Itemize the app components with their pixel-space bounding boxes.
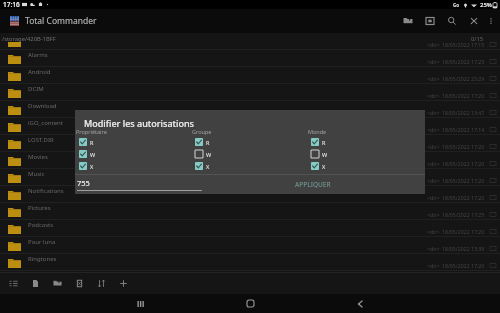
button[interactable]: Android [0, 67, 500, 84]
button[interactable]: DCIM [0, 84, 500, 101]
button[interactable]: New folder [46, 272, 68, 294]
staticText: <dir> [427, 160, 440, 167]
staticText: 17:16 [3, 0, 20, 9]
staticText: 18/05/2022 17:20 [442, 160, 485, 167]
staticText: 18/05/2022 23:29 [442, 75, 485, 82]
staticText: <dir> [427, 228, 440, 235]
staticText: LOST.DIR [28, 136, 54, 144]
button[interactable]: Alarms [0, 50, 500, 67]
staticText: /storage/420B-1BFF [2, 35, 56, 43]
button[interactable]: Music [0, 169, 500, 186]
button[interactable]: Select all [2, 272, 24, 294]
staticText: <dir> [427, 194, 440, 201]
staticText: <dir> [427, 126, 440, 133]
staticText: R [206, 139, 210, 146]
button[interactable]: Folder [397, 9, 419, 33]
staticText: W [322, 151, 328, 158]
staticText: <dir> [427, 211, 440, 218]
staticText: X [322, 163, 326, 170]
button[interactable]: X [307, 160, 417, 172]
staticText: Monde [308, 128, 327, 135]
button[interactable]: W [191, 148, 301, 160]
button[interactable]: R [75, 136, 185, 148]
button[interactable]: Back [335, 294, 385, 313]
button[interactable]: Home [225, 294, 275, 313]
button[interactable]: X [191, 160, 301, 172]
button[interactable]: Add [112, 272, 134, 294]
staticText: APPLIQUER [295, 180, 331, 189]
staticText: 18/05/2022 17:20 [442, 228, 485, 235]
staticText: X [90, 163, 94, 170]
staticText: 18/05/2022 13:47 [442, 109, 485, 116]
staticText: <dir> [427, 262, 440, 269]
staticText: 25% [480, 1, 492, 9]
staticText: <dir> [427, 58, 440, 65]
staticText: X [206, 163, 210, 170]
staticText: Android [28, 68, 51, 76]
staticText: 755 [77, 178, 90, 188]
staticText: <dir> [427, 75, 440, 82]
staticText: 18/05/2022 17:20 [442, 194, 485, 201]
staticText: 18/05/2022 17:25 [442, 58, 485, 65]
button[interactable]: Notifications [0, 186, 500, 203]
staticText: Modifier les autorisations [84, 117, 194, 129]
button[interactable]: Total Commander [10, 15, 97, 27]
staticText: W [90, 151, 96, 158]
staticText: Pour luna [28, 238, 56, 246]
button[interactable]: X [75, 160, 185, 172]
staticText: 18/05/2022 17:25 [442, 211, 485, 218]
staticText: Alarms [28, 51, 48, 59]
button[interactable]: Ringtones [0, 254, 500, 271]
staticText: Music [28, 170, 45, 178]
button[interactable]: Image [419, 9, 441, 33]
staticText: DCIM [28, 85, 44, 93]
staticText: Download [28, 102, 57, 110]
staticText: Propriétaire [76, 128, 107, 135]
button[interactable]: Download [0, 101, 500, 118]
staticText: R [322, 139, 326, 146]
staticText: <dir> [427, 143, 440, 150]
staticText: W [206, 151, 212, 158]
button[interactable]: W [75, 148, 185, 160]
staticText: Notifications [28, 187, 64, 195]
staticText: Total Commander [25, 15, 97, 27]
staticText: Podcasts [28, 221, 54, 229]
staticText: Movies [28, 153, 48, 161]
button[interactable]: W [307, 148, 417, 160]
button[interactable]: Close [463, 9, 485, 33]
button[interactable]: LOST.DIR [0, 135, 500, 152]
button[interactable]: Movies [0, 152, 500, 169]
staticText: Pictures [28, 204, 51, 212]
button[interactable]: Pour luna [0, 237, 500, 254]
staticText: 0/15 [471, 35, 484, 43]
staticText: Ringtones [28, 255, 57, 263]
staticText: Go [453, 2, 460, 8]
button[interactable]: APPLIQUER [287, 176, 339, 193]
button[interactable]: Pictures [0, 203, 500, 220]
button[interactable]: Podcasts [0, 220, 500, 237]
button[interactable]: iGO_content [0, 118, 500, 135]
staticText: 18/05/2022 17:20 [442, 262, 485, 269]
staticText: 18/05/2022 17:20 [442, 177, 485, 184]
button[interactable]: R [307, 136, 417, 148]
staticText: 18/05/2022 17:20 [442, 143, 485, 150]
staticText: 18/05/2022 13:39 [442, 245, 485, 252]
staticText: <dir> [427, 177, 440, 184]
staticText: <dir> [427, 92, 440, 99]
button[interactable]: Delete [68, 272, 90, 294]
button[interactable]: New file [24, 272, 46, 294]
button[interactable]: <dir> [0, 33, 500, 50]
staticText: 18/05/2022 17:20 [442, 92, 485, 99]
button[interactable]: Recents [115, 294, 165, 313]
staticText: R [90, 139, 94, 146]
staticText: iGO_content [28, 119, 63, 127]
staticText: 18/05/2022 17:15 [442, 41, 485, 48]
staticText: 18/05/2022 17:14 [442, 126, 485, 133]
button[interactable]: R [191, 136, 301, 148]
staticText: <dir> [427, 41, 440, 48]
button[interactable]: Sort [90, 272, 112, 294]
staticText: <dir> [427, 109, 440, 116]
button[interactable]: Search [441, 9, 463, 33]
button[interactable]: More options [485, 9, 497, 33]
staticText: Groupe [192, 128, 212, 135]
